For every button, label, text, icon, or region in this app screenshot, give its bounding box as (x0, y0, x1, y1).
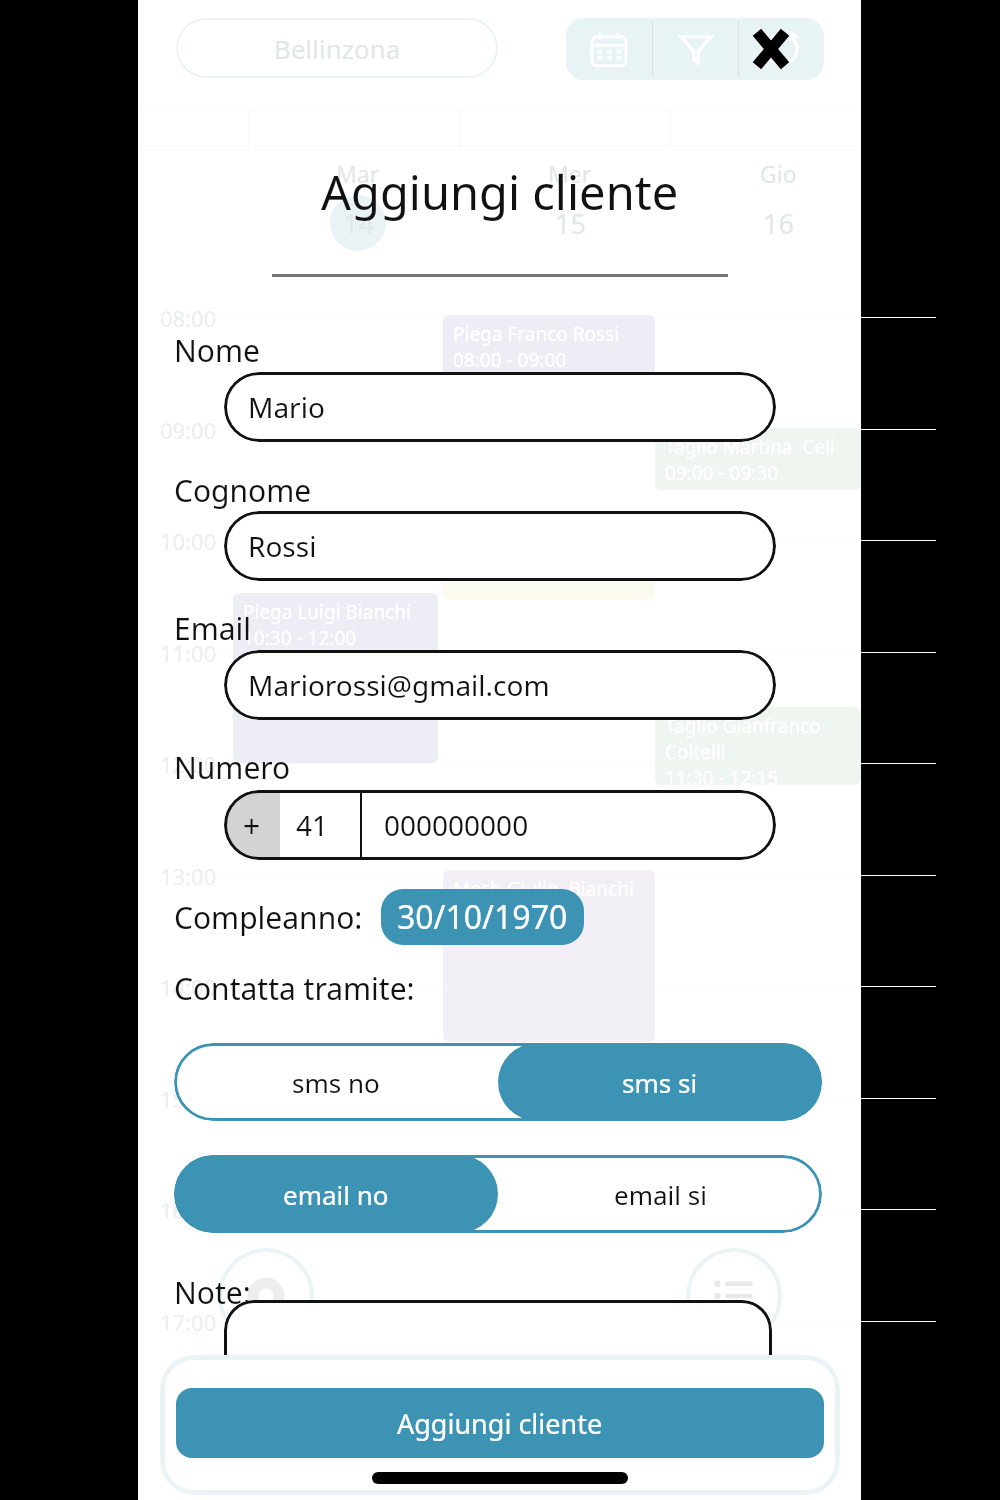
staticText: 13:00 - 14:30 (453, 902, 567, 928)
button[interactable]: + (224, 790, 280, 860)
button[interactable]: Mariorossi@gmail.com (224, 650, 776, 720)
staticText: sms no (292, 1065, 380, 1100)
staticText: Email (174, 608, 252, 649)
staticText: Note: (174, 1272, 251, 1313)
staticText: Gio (760, 158, 797, 189)
staticText: sms si (622, 1065, 698, 1100)
staticText: Piega Franco Rossi (453, 321, 620, 347)
button[interactable]: Mario (224, 372, 776, 442)
staticText: Cognome (174, 470, 312, 511)
staticText: Piega Luigi Bianchi (243, 599, 411, 625)
staticText: Mariorossi@gmail.com (248, 666, 550, 704)
staticText: Mer (548, 158, 592, 189)
staticText: 15:00 (160, 1084, 217, 1114)
staticText: Mario (248, 388, 325, 426)
button[interactable]: 000000000 (362, 790, 776, 860)
staticText: 11:00 (160, 638, 217, 668)
staticText: 17:00 (160, 1307, 217, 1337)
staticText: Mesh Giulio Bianchi (453, 876, 634, 902)
staticText: 10:30 - 12:00 (243, 625, 357, 651)
button[interactable]: 30/10/1970 (381, 889, 584, 945)
staticText: Aggiungi cliente (397, 1405, 603, 1442)
staticText: 16:00 (160, 1195, 217, 1225)
staticText: 15 (555, 205, 586, 242)
staticText: Taglio Martina Celi (665, 434, 835, 460)
staticText: 11:30 - 12:15 (665, 765, 779, 785)
staticText: Taglio Gianfranco Coltelli (665, 713, 861, 765)
button[interactable]: sms no (174, 1043, 498, 1121)
button[interactable]: Rossi (224, 511, 776, 581)
staticText: + (243, 805, 261, 846)
button[interactable]: Calendar (566, 18, 652, 80)
staticText: 13:00 (160, 861, 217, 891)
staticText: email si (614, 1177, 707, 1212)
staticText: Numero (174, 747, 291, 788)
staticText: Bellinzona (274, 31, 401, 66)
staticText: 000000000 (384, 806, 529, 844)
button[interactable]: Bellinzona (176, 18, 498, 78)
staticText: Mar (336, 158, 380, 189)
staticText: 08:00 - 09:00 (453, 347, 567, 373)
staticText: 09:00 (160, 415, 217, 445)
staticText: 12:00 (160, 749, 217, 779)
staticText: Aggiungi cliente (321, 160, 679, 224)
staticText: 08:00 (160, 303, 217, 333)
button[interactable]: List (686, 1248, 782, 1344)
button[interactable]: Aggiungi cliente (176, 1388, 824, 1458)
staticText: 16 (763, 205, 794, 242)
button[interactable]: email no (174, 1155, 498, 1233)
staticText: Contatta tramite: (174, 968, 415, 1009)
staticText: email no (283, 1177, 389, 1212)
staticText: 14 (343, 205, 374, 242)
button[interactable]: 41 (280, 790, 360, 860)
staticText: 14:00 (160, 972, 217, 1002)
button[interactable]: sms si (498, 1043, 822, 1121)
button[interactable]: Filter (653, 18, 738, 80)
staticText: Compleanno: (174, 897, 363, 938)
staticText: 10:00 (160, 526, 217, 556)
button[interactable]: Refresh (739, 18, 824, 80)
staticText: 09:00 - 09:30 (665, 460, 779, 486)
button[interactable]: Eye (218, 1248, 314, 1344)
staticText: 41 (296, 806, 329, 844)
staticText: Nome (174, 330, 260, 371)
staticText: 30/10/1970 (397, 895, 568, 939)
staticText: Rossi (248, 527, 317, 565)
button[interactable]: email si (498, 1155, 822, 1233)
button[interactable] (224, 1300, 772, 1420)
